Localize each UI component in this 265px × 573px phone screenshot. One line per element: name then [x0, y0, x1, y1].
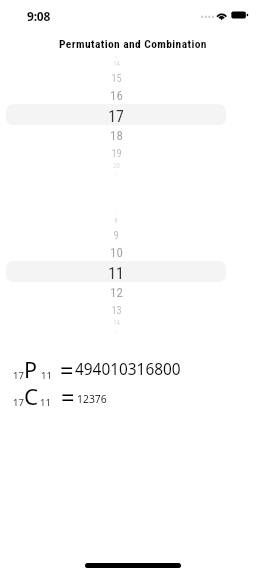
staticText: 16: [110, 88, 123, 103]
staticText: 17: [108, 107, 124, 126]
staticText: 11: [108, 264, 124, 283]
staticText: P: [24, 355, 38, 384]
other: Status icons: [198, 9, 252, 23]
staticText: 17: [13, 396, 24, 409]
staticText: 14: [113, 319, 120, 327]
staticText: 12376: [77, 392, 107, 406]
staticText: 15: [111, 72, 122, 84]
staticText: Permutation and Combination: [59, 37, 207, 50]
staticText: 20: [113, 162, 120, 170]
staticText: 11: [41, 369, 52, 382]
staticText: 494010316800: [75, 359, 181, 380]
staticText: C: [24, 381, 39, 411]
other: Home indicator: [85, 563, 181, 568]
staticText: 9: [113, 229, 119, 241]
button[interactable]: 6: [6, 203, 226, 343]
staticText: 9:08: [27, 8, 51, 24]
staticText: 12: [110, 285, 123, 300]
staticText: =: [61, 381, 75, 413]
staticText: 13: [111, 304, 122, 316]
staticText: 18: [110, 128, 123, 143]
staticText: =: [60, 354, 74, 386]
staticText: 10: [110, 245, 123, 260]
staticText: 19: [111, 147, 122, 159]
staticText: 11: [40, 396, 51, 409]
staticText: 14: [113, 60, 120, 68]
staticText: 8: [114, 217, 118, 225]
button[interactable]: 12: [6, 46, 226, 186]
staticText: 17: [13, 369, 24, 382]
